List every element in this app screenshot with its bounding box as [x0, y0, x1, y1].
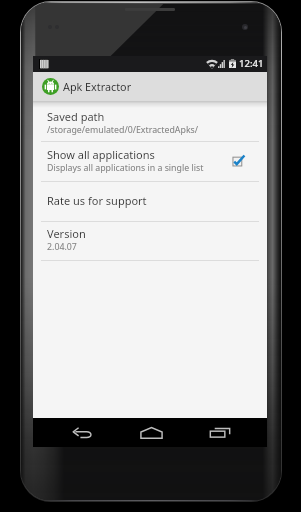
- button[interactable]: Back: [54, 418, 110, 447]
- staticText: Displays all applications in a single li…: [47, 162, 204, 174]
- button[interactable]: Saved path: [33, 105, 267, 141]
- button[interactable]: Version: [33, 221, 267, 260]
- button[interactable]: Home: [123, 418, 179, 447]
- button[interactable]: Rate us for support: [33, 181, 267, 221]
- button[interactable]: Show all applications: [33, 141, 267, 181]
- staticText: 12:41: [239, 57, 264, 70]
- button[interactable]: Recent apps: [192, 418, 248, 447]
- button[interactable]: Apk Extractor: [33, 72, 267, 101]
- staticText: Show all applications: [47, 147, 155, 162]
- staticText: /storage/emulated/0/ExtractedApks/: [47, 124, 199, 136]
- staticText: 2.04.07: [47, 241, 77, 253]
- staticText: Version: [47, 226, 86, 241]
- staticText: Rate us for support: [47, 193, 147, 208]
- button[interactable]: Show all applications toggle: [227, 150, 249, 172]
- staticText: Apk Extractor: [63, 79, 132, 94]
- staticText: Saved path: [47, 109, 105, 124]
